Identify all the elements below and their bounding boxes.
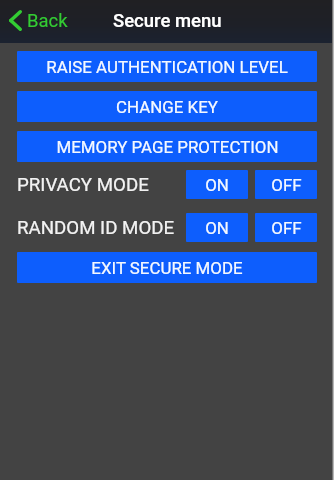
staticText: ON bbox=[205, 218, 229, 238]
button[interactable]: MEMORY PAGE PROTECTION bbox=[17, 131, 317, 162]
staticText: PRIVACY MODE bbox=[17, 174, 149, 196]
staticText: Secure menu bbox=[113, 10, 222, 32]
button[interactable]: ON bbox=[186, 170, 248, 199]
staticText: RAISE AUTHENTICATION LEVEL bbox=[46, 57, 288, 77]
staticText: EXIT SECURE MODE bbox=[91, 258, 243, 278]
staticText: CHANGE KEY bbox=[116, 97, 218, 117]
staticText: MEMORY PAGE PROTECTION bbox=[56, 137, 279, 157]
staticText: Back bbox=[27, 10, 68, 32]
staticText: RANDOM ID MODE bbox=[17, 217, 175, 239]
staticText: OFF bbox=[271, 218, 302, 238]
button[interactable]: CHANGE KEY bbox=[17, 91, 317, 122]
button[interactable]: EXIT SECURE MODE bbox=[17, 252, 317, 283]
button[interactable]: OFF bbox=[255, 213, 317, 242]
staticText: OFF bbox=[271, 175, 302, 195]
button[interactable]: OFF bbox=[255, 170, 317, 199]
button[interactable]: ON bbox=[186, 213, 248, 242]
button[interactable]: Back bbox=[9, 0, 68, 42]
button[interactable]: RAISE AUTHENTICATION LEVEL bbox=[17, 51, 317, 82]
staticText: ON bbox=[205, 175, 229, 195]
